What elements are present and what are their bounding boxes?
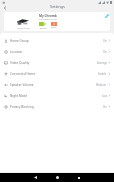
staticText: On <box>103 50 107 54</box>
staticText: Battery <box>40 27 47 30</box>
button[interactable]: Privacy Blocking <box>0 101 114 112</box>
staticText: Speaker Volume <box>10 83 34 87</box>
button[interactable]: Connected Home <box>0 68 114 79</box>
button[interactable]: Chromecast <box>4 12 110 31</box>
staticText: Connected Home <box>10 72 36 76</box>
staticText: Video Quality <box>10 61 30 65</box>
staticText: Signal <box>51 26 57 29</box>
staticText: My Chromb <box>39 14 57 18</box>
staticText: On <box>103 105 107 109</box>
staticText: On <box>103 39 107 43</box>
staticText: Connected to WiFi <box>39 18 57 21</box>
button[interactable]: Home Group <box>0 35 114 46</box>
staticText: Home Group <box>10 39 29 43</box>
staticText: Enable <box>98 72 107 76</box>
staticText: Privacy Blocking <box>10 105 34 109</box>
button[interactable]: Back <box>24 173 46 182</box>
button[interactable]: Video Quality <box>0 57 114 68</box>
staticText: Location <box>10 50 23 54</box>
staticText: Chromecast <box>17 27 30 30</box>
staticText: Settings <box>50 4 65 9</box>
staticText: Medium <box>96 83 107 87</box>
staticText: Night Mode <box>10 94 28 98</box>
button[interactable]: Recent apps <box>68 173 90 182</box>
button[interactable]: Back <box>1 4 9 12</box>
staticText: Low <box>102 94 107 98</box>
button[interactable]: Speaker Volume <box>0 79 114 90</box>
button[interactable]: Home <box>46 173 68 182</box>
button[interactable]: Night Mode <box>0 90 114 101</box>
button[interactable]: Location <box>0 46 114 57</box>
button[interactable]: Edit device name <box>103 12 110 19</box>
staticText: Average <box>97 61 107 65</box>
